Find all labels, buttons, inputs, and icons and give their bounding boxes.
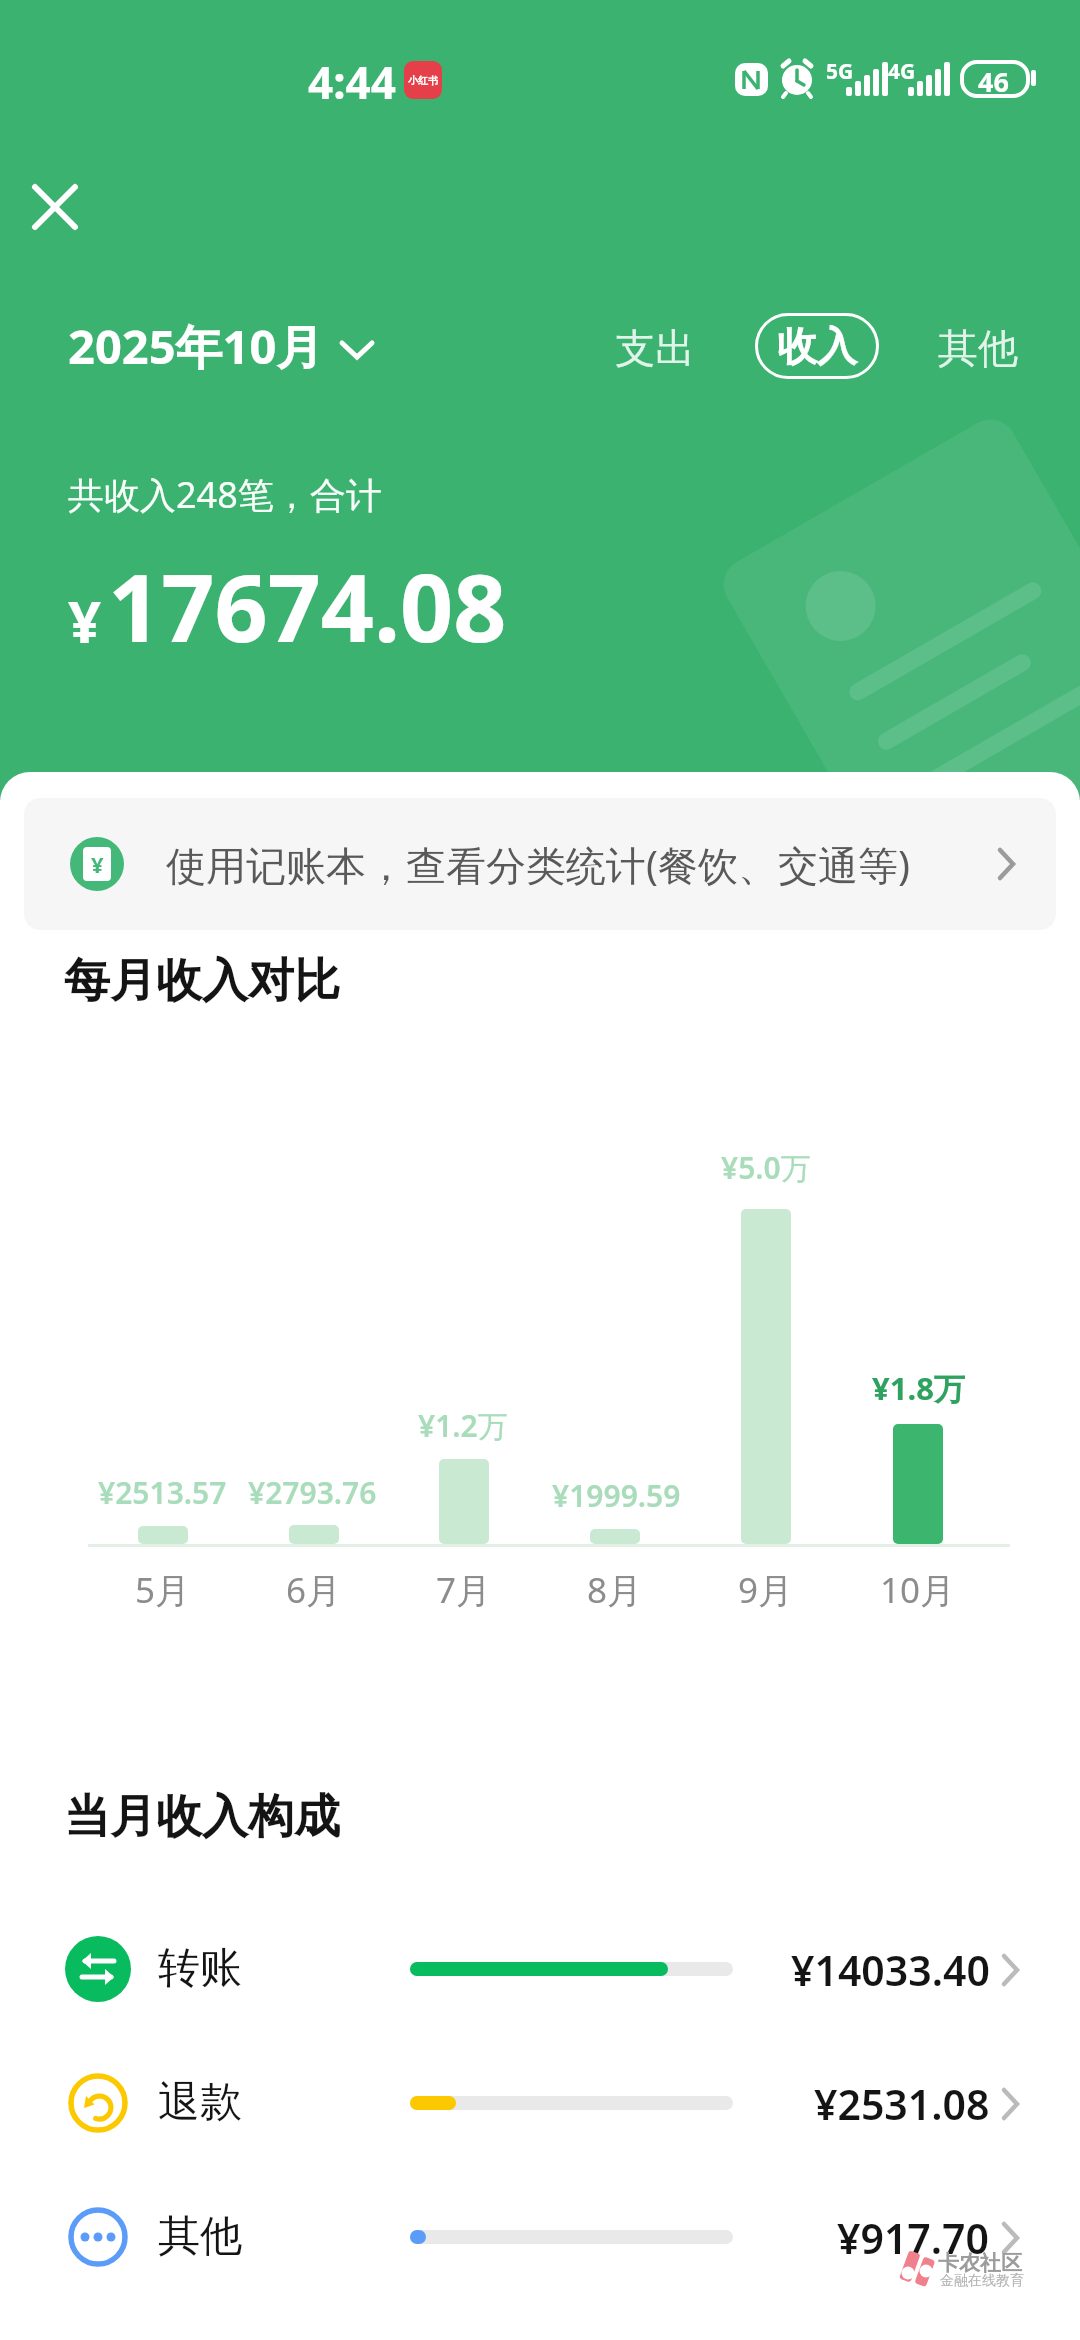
staticText: 每月收入对比 xyxy=(64,952,340,1010)
staticText: 4G xyxy=(888,57,916,86)
staticText: 10月 xyxy=(880,1566,956,1614)
staticText: 金融在线教育 xyxy=(940,2272,1024,2290)
staticText: 退款 xyxy=(158,2076,242,2129)
staticText: 共收入248笔，合计 xyxy=(68,470,382,519)
staticText: ¥1.8万 xyxy=(872,1367,965,1409)
button[interactable]: 2025年10月 xyxy=(68,314,374,378)
staticText: 7月 xyxy=(436,1566,492,1614)
staticText: ¥2531.08 xyxy=(814,2076,990,2132)
staticText: 5G xyxy=(826,57,854,86)
staticText: 2025年10月 xyxy=(68,314,324,378)
staticText: 5月 xyxy=(135,1566,191,1614)
staticText: ¥ xyxy=(91,849,104,879)
staticText: 卡农社区 xyxy=(938,2250,1022,2276)
staticText: 4:44 xyxy=(308,52,396,112)
staticText: 其他 xyxy=(938,323,1018,373)
staticText: ¥ xyxy=(68,581,102,660)
staticText: ¥1.2万 xyxy=(418,1405,508,1446)
staticText: 其他 xyxy=(158,2210,242,2263)
staticText: ¥1999.59 xyxy=(552,1475,681,1516)
button[interactable]: 其他 xyxy=(0,2177,1080,2297)
button[interactable]: 支出 xyxy=(595,320,715,376)
staticText: ¥2513.57 xyxy=(98,1472,227,1513)
button[interactable] xyxy=(33,185,77,229)
staticText: 小红书 xyxy=(408,74,438,87)
button[interactable]: ¥ xyxy=(24,798,1056,930)
staticText: 17674.08 xyxy=(108,543,507,670)
staticText: 使用记账本，查看分类统计(餐饮、交通等) xyxy=(166,837,910,892)
staticText: 6月 xyxy=(286,1566,342,1614)
button[interactable]: 收入 xyxy=(755,313,879,379)
staticText: ¥2793.76 xyxy=(248,1472,377,1513)
button[interactable]: 其他 xyxy=(918,320,1038,376)
staticText: 当月收入构成 xyxy=(64,1788,340,1846)
staticText: 收入 xyxy=(777,321,857,371)
staticText: ¥14033.40 xyxy=(791,1942,990,1998)
staticText: ¥917.70 xyxy=(837,2210,990,2266)
button[interactable]: 退款 xyxy=(0,2043,1080,2163)
staticText: 8月 xyxy=(587,1566,643,1614)
staticText: 转账 xyxy=(158,1942,242,1995)
staticText: 9月 xyxy=(738,1566,794,1614)
staticText: 支出 xyxy=(615,323,695,373)
staticText: ¥5.0万 xyxy=(721,1147,811,1188)
button[interactable]: 转账 xyxy=(0,1909,1080,2029)
staticText: 46 xyxy=(978,63,1009,100)
